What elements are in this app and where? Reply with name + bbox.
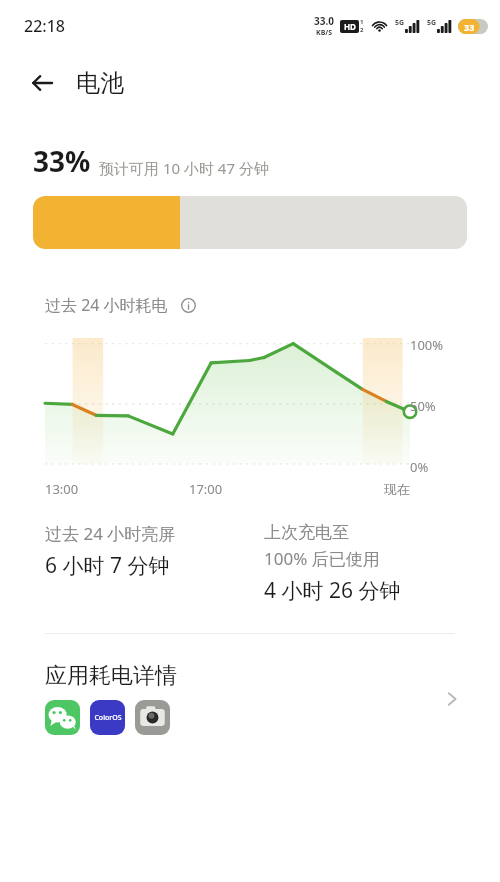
staticText: 现在: [384, 481, 410, 497]
staticText: 33.0: [314, 14, 334, 28]
staticText: 0%: [410, 458, 429, 472]
staticText: 13:00: [45, 480, 79, 498]
button[interactable]: Info: [176, 293, 200, 317]
staticText: 应用耗电详情: [45, 662, 177, 690]
staticText: KB/S: [316, 28, 333, 38]
staticText: 过去 24 小时亮屏: [45, 522, 176, 545]
staticText: 33%: [33, 142, 91, 180]
button[interactable]: Back: [20, 61, 64, 105]
staticText: 100%: [410, 336, 444, 354]
staticText: 预计可用 10 小时 47 分钟: [99, 158, 269, 178]
staticText: 过去 24 小时耗电: [45, 294, 168, 316]
staticText: HD: [344, 21, 356, 32]
staticText: 电池: [76, 68, 124, 98]
staticText: 2: [360, 26, 364, 34]
staticText: 4 小时 26 分钟: [264, 576, 401, 605]
staticText: 1: [360, 18, 364, 26]
staticText: 50%: [410, 397, 436, 415]
staticText: 17:00: [189, 480, 223, 498]
staticText: 5G: [395, 18, 405, 28]
staticText: 22:18: [24, 15, 65, 37]
staticText: 上次充电至 100% 后已使用: [264, 522, 380, 570]
staticText: 5G: [427, 18, 437, 28]
button[interactable]: 应用耗电详情: [0, 658, 500, 753]
staticText: ColorOS: [94, 713, 122, 723]
staticText: 33: [464, 21, 475, 33]
staticText: 6 小时 7 分钟: [45, 551, 170, 580]
